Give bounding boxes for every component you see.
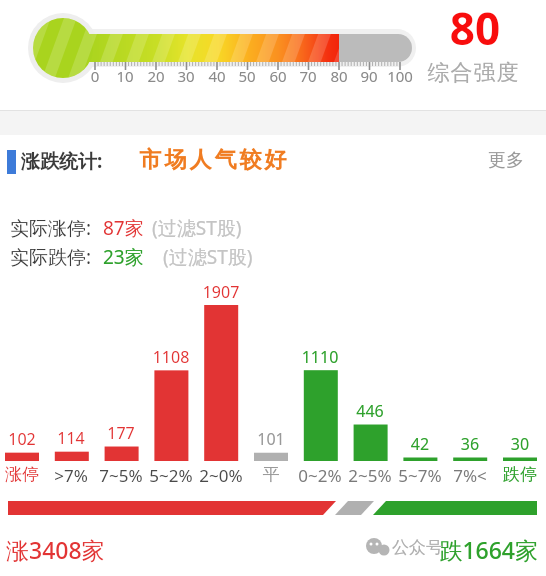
staticText: 7~5% — [91, 464, 151, 487]
staticText: 80 — [319, 66, 359, 86]
staticText: 42 — [390, 433, 450, 455]
staticText: 36 — [440, 433, 500, 455]
staticText: 10 — [105, 66, 145, 86]
staticText: 80 — [430, 0, 520, 58]
staticText: 涨停 — [0, 464, 52, 485]
staticText: 跌停 — [490, 464, 546, 485]
staticText: 更多 — [488, 149, 524, 172]
staticText: 平 — [241, 464, 301, 485]
staticText: 1907 — [191, 281, 251, 303]
staticText: 70 — [288, 66, 328, 86]
staticText: 20 — [136, 66, 176, 86]
staticText: 100 — [380, 66, 420, 86]
staticText: 跌1664家 — [418, 534, 538, 565]
staticText: 5~7% — [390, 464, 450, 487]
staticText: 2~0% — [191, 464, 251, 487]
staticText: 1110 — [290, 346, 350, 368]
staticText: 综合强度 — [427, 59, 519, 87]
staticText: 实际跌停: — [10, 244, 92, 270]
staticText: 23家 — [103, 244, 144, 270]
staticText: 102 — [0, 428, 52, 450]
staticText: 市场人气较好 — [138, 146, 288, 174]
staticText: 177 — [91, 422, 151, 444]
staticText: 90 — [349, 66, 389, 86]
staticText: 0 — [75, 66, 115, 86]
staticText: 446 — [340, 400, 400, 422]
staticText: 60 — [258, 66, 298, 86]
staticText: 7%< — [440, 464, 500, 487]
staticText: 1108 — [141, 346, 201, 368]
staticText: (过滤ST股) — [163, 244, 253, 270]
staticText: 5~2% — [141, 464, 201, 487]
staticText: 40 — [197, 66, 237, 86]
staticText: 50 — [227, 66, 267, 86]
staticText: 87家 — [103, 215, 144, 241]
staticText: (过滤ST股) — [152, 215, 242, 241]
staticText: 实际涨停: — [10, 215, 92, 241]
staticText: 30 — [166, 66, 206, 86]
staticText: 公众号 — [392, 537, 443, 558]
staticText: 30 — [490, 433, 546, 455]
button[interactable]: 更多 — [488, 149, 524, 172]
staticText: 涨跌统计: — [21, 148, 103, 174]
staticText: >7% — [41, 464, 101, 487]
staticText: 2~5% — [340, 464, 400, 487]
staticText: 101 — [241, 428, 301, 450]
staticText: 涨3408家 — [6, 534, 105, 565]
staticText: 0~2% — [290, 464, 350, 487]
staticText: 114 — [41, 427, 101, 449]
